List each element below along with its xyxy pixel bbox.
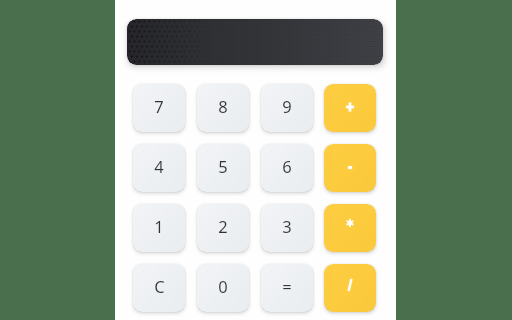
- button[interactable]: 6: [261, 144, 313, 192]
- staticText: 0: [218, 275, 228, 297]
- staticText: 1: [154, 215, 164, 237]
- button[interactable]: 2: [197, 204, 249, 252]
- staticText: 2: [218, 215, 228, 237]
- button[interactable]: 7: [133, 84, 185, 132]
- button[interactable]: =: [261, 264, 313, 312]
- staticText: 5: [218, 155, 228, 177]
- button[interactable]: 8: [197, 84, 249, 132]
- staticText: 4: [154, 155, 164, 177]
- staticText: 8: [218, 95, 228, 117]
- button[interactable]: Multiply: [324, 204, 376, 252]
- button[interactable]: 5: [197, 144, 249, 192]
- button[interactable]: C: [133, 264, 185, 312]
- button[interactable]: 3: [261, 204, 313, 252]
- button[interactable]: Divide: [324, 264, 376, 312]
- button[interactable]: 9: [261, 84, 313, 132]
- button[interactable]: 4: [133, 144, 185, 192]
- staticText: =: [282, 275, 292, 297]
- button[interactable]: Add: [324, 84, 376, 132]
- staticText: 9: [282, 95, 292, 117]
- staticText: 7: [154, 95, 164, 117]
- staticText: 6: [282, 155, 292, 177]
- button[interactable]: 0: [197, 264, 249, 312]
- button[interactable]: 1: [133, 204, 185, 252]
- button[interactable]: Subtract: [324, 144, 376, 192]
- staticText: 3: [282, 215, 292, 237]
- staticText: C: [154, 275, 165, 297]
- button[interactable]: Calculator display: [127, 19, 383, 65]
